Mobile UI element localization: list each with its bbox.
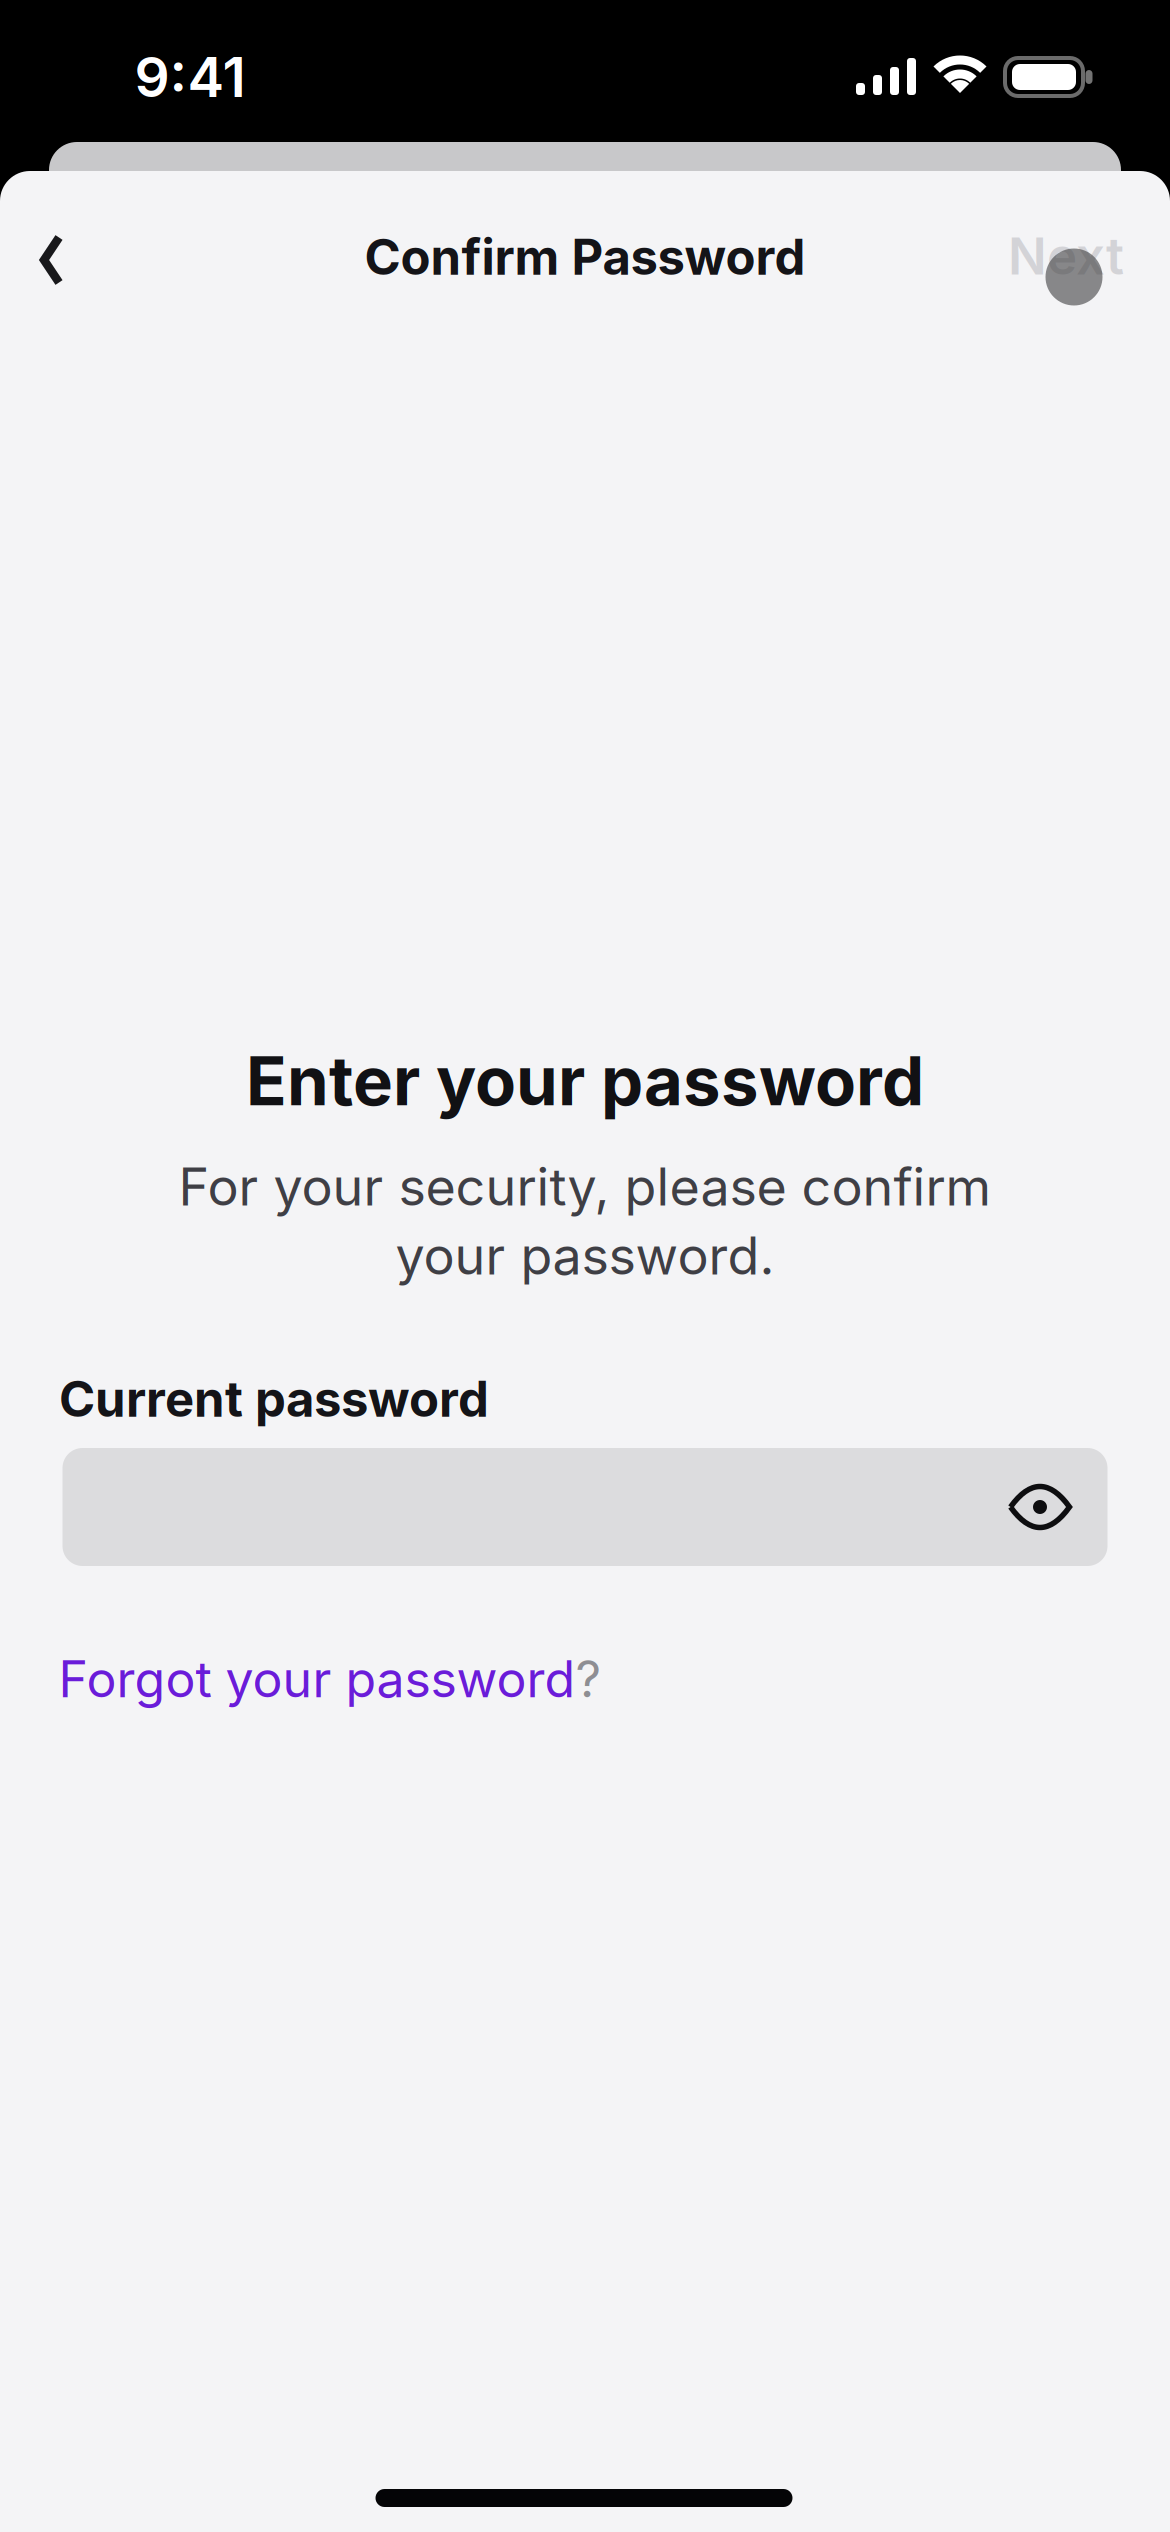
button[interactable]: Back bbox=[13, 225, 83, 295]
button[interactable]: Next bbox=[1008, 225, 1124, 287]
staticText: 9:41 bbox=[134, 44, 245, 110]
staticText: Enter your password bbox=[246, 1040, 924, 1122]
staticText: Next bbox=[1008, 225, 1124, 287]
staticText: For your security, please confirm bbox=[178, 1155, 991, 1218]
staticText: Confirm Password bbox=[364, 227, 805, 287]
staticText: ? bbox=[575, 1649, 601, 1709]
button[interactable]: Show password bbox=[1005, 1479, 1075, 1535]
staticText: Forgot your password bbox=[58, 1649, 575, 1709]
staticText: your password. bbox=[395, 1224, 774, 1287]
staticText: Current password bbox=[59, 1369, 489, 1429]
button[interactable]: Forgot your password bbox=[58, 1649, 601, 1709]
button[interactable]: Current password field bbox=[62, 1448, 1107, 1566]
